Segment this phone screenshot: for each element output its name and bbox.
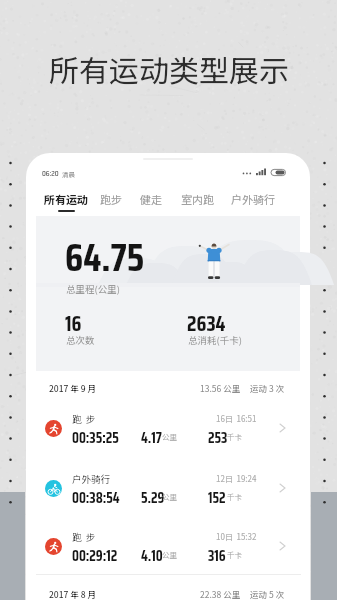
- other: 查看详情: [276, 421, 290, 435]
- staticText: 千卡: [227, 549, 242, 560]
- staticText: 公里: [162, 431, 177, 442]
- button[interactable]: 户外骑行: [228, 186, 278, 238]
- staticText: 2017 年 9 月: [49, 382, 96, 394]
- staticText: 4.10: [141, 545, 163, 568]
- staticText: 16: [65, 307, 82, 340]
- staticText: 152: [208, 487, 226, 510]
- staticText: 运动 3 次: [250, 382, 285, 394]
- staticText: 运动 5 次: [250, 588, 285, 600]
- staticText: 总里程(公里): [66, 282, 120, 296]
- staticText: 64.75: [65, 227, 145, 288]
- staticText: 2017 年 8 月: [49, 588, 96, 600]
- button[interactable]: 2017 年 9 月: [36, 376, 301, 400]
- staticText: 总次数: [66, 333, 95, 347]
- staticText: 户外骑行: [72, 472, 111, 486]
- staticText: 06:20: [42, 167, 59, 180]
- staticText: 总消耗(千卡): [188, 333, 242, 347]
- staticText: 4.17: [141, 427, 162, 450]
- staticText: 10日 15:32: [216, 531, 257, 543]
- staticText: 16日 16:51: [216, 413, 257, 425]
- staticText: 千卡: [227, 491, 242, 502]
- staticText: 清晨: [62, 169, 75, 178]
- staticText: 千卡: [227, 431, 242, 442]
- button[interactable]: 户外骑行: [36, 461, 301, 515]
- staticText: 13.56 公里: [200, 382, 241, 394]
- staticText: 跑步: [100, 191, 122, 207]
- button[interactable]: 跑 步: [36, 519, 301, 573]
- button[interactable]: 所有运动: [42, 186, 90, 238]
- staticText: 公里: [162, 491, 177, 502]
- staticText: 2634: [187, 307, 226, 340]
- staticText: 253: [208, 427, 228, 450]
- staticText: 户外骑行: [231, 191, 275, 207]
- button[interactable]: 室内跑: [178, 186, 217, 238]
- button[interactable]: 2017 年 8 月: [36, 582, 301, 600]
- staticText: 所有运动类型展示: [49, 47, 289, 90]
- staticText: 健走: [140, 191, 162, 207]
- other: 查看详情: [276, 481, 290, 495]
- staticText: 316: [208, 545, 226, 568]
- button[interactable]: 健走: [137, 186, 165, 238]
- staticText: 00:29:12: [72, 545, 118, 568]
- staticText: 公里: [162, 549, 177, 560]
- staticText: 跑 步: [72, 530, 96, 544]
- button[interactable]: 跑步: [97, 186, 125, 238]
- button[interactable]: 跑 步: [36, 401, 301, 455]
- staticText: 00:35:25: [72, 427, 119, 450]
- staticText: 22.38 公里: [200, 588, 241, 600]
- staticText: 所有运动: [44, 191, 88, 207]
- other: 查看详情: [276, 539, 290, 553]
- staticText: 12日 19:24: [216, 473, 257, 485]
- staticText: 00:38:54: [72, 487, 120, 510]
- staticText: 跑 步: [72, 412, 96, 426]
- staticText: 5.29: [141, 487, 165, 510]
- staticText: 室内跑: [181, 191, 214, 207]
